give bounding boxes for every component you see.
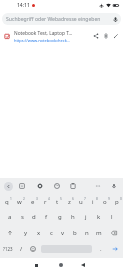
button[interactable]: Go — [107, 241, 123, 256]
button[interactable]: Copy link — [101, 31, 111, 41]
button[interactable]: f — [40, 210, 53, 224]
button[interactable]: Recents — [29, 258, 43, 272]
staticText: u — [79, 198, 83, 206]
button[interactable]: q — [0, 195, 13, 209]
button[interactable]: u — [75, 195, 87, 209]
button[interactable]: l — [105, 210, 118, 224]
staticText: 4 — [48, 197, 50, 201]
button[interactable]: / — [15, 241, 27, 256]
button[interactable]: Expand toolbar — [4, 182, 13, 191]
staticText: w — [17, 198, 22, 206]
button[interactable]: h — [66, 210, 79, 224]
button[interactable]: c — [45, 226, 57, 240]
staticText: 2 — [23, 197, 25, 201]
staticText: Notebook Test, Laptop T... — [14, 30, 73, 37]
button[interactable]: Suchbegriff oder Webadresse eingeben — [2, 13, 121, 25]
staticText: e — [31, 198, 35, 206]
staticText: 8 — [96, 197, 98, 201]
staticText: k — [97, 213, 101, 221]
staticText: d — [32, 213, 36, 221]
button[interactable]: z — [63, 195, 75, 209]
button[interactable]: Stickers — [17, 181, 27, 191]
staticText: a — [8, 213, 12, 221]
button[interactable]: s — [16, 210, 28, 224]
button[interactable]: More options — [93, 181, 103, 191]
staticText: c — [50, 229, 53, 237]
staticText: m — [96, 229, 102, 237]
staticText: f — [45, 213, 48, 221]
button[interactable]: k — [92, 210, 105, 224]
staticText: p — [115, 198, 119, 206]
button[interactable]: y — [19, 226, 32, 240]
button[interactable]: p — [111, 195, 123, 209]
button[interactable]: Themes — [52, 181, 62, 191]
staticText: g — [58, 213, 62, 221]
staticText: s — [21, 213, 24, 221]
button[interactable]: m — [93, 226, 105, 240]
staticText: y — [24, 229, 28, 237]
staticText: z — [68, 198, 71, 206]
button[interactable]: e — [26, 195, 39, 209]
button[interactable]: Voice input — [109, 181, 119, 191]
staticText: r — [44, 198, 47, 206]
button[interactable]: w — [13, 195, 26, 209]
staticText: x — [37, 229, 41, 237]
button[interactable]: n — [81, 226, 93, 240]
button[interactable]: . — [95, 241, 107, 256]
button[interactable]: Settings — [35, 181, 45, 191]
staticText: h — [71, 213, 75, 221]
button[interactable]: x — [32, 226, 45, 240]
button[interactable]: Shift — [0, 226, 19, 240]
button[interactable]: o — [99, 195, 111, 209]
staticText: n — [85, 229, 89, 237]
staticText: 1 — [10, 197, 12, 201]
button[interactable]: r — [39, 195, 51, 209]
button[interactable]: j — [79, 210, 92, 224]
staticText: 14:11 — [17, 2, 30, 9]
staticText: . — [100, 245, 102, 253]
staticText: v — [61, 229, 65, 237]
staticText: 7 — [84, 197, 86, 201]
staticText: 5 — [60, 197, 62, 201]
staticText: https://www.notebookcheck... — [14, 38, 71, 43]
staticText: t — [56, 198, 59, 206]
staticText: 9 — [108, 197, 110, 201]
staticText: q — [5, 198, 9, 206]
button[interactable]: t — [51, 195, 63, 209]
button[interactable]: Edit — [111, 31, 121, 41]
staticText: b — [73, 229, 77, 237]
staticText: 0 — [120, 197, 122, 201]
button[interactable]: Share — [91, 31, 101, 41]
staticText: j — [85, 213, 87, 221]
button[interactable]: a — [4, 210, 16, 224]
staticText: / — [20, 245, 23, 253]
button[interactable]: g — [53, 210, 66, 224]
button[interactable]: Back — [76, 258, 90, 272]
button[interactable]: ?123 — [0, 241, 15, 256]
staticText: o — [103, 198, 107, 206]
button[interactable]: v — [57, 226, 69, 240]
button[interactable]: Clipboard — [68, 181, 78, 191]
button[interactable]: Emoji — [27, 241, 39, 256]
button[interactable]: Voice search — [111, 15, 119, 23]
staticText: i — [92, 198, 94, 206]
button[interactable]: Backspace — [105, 226, 123, 240]
button[interactable]: b — [69, 226, 81, 240]
staticText: Suchbegriff oder Webadresse eingeben — [6, 16, 101, 23]
button[interactable]: Home — [54, 258, 68, 272]
staticText: 6 — [72, 197, 74, 201]
button[interactable]: Notebook Test, Laptop T... — [0, 27, 123, 45]
button[interactable]: d — [28, 210, 40, 224]
staticText: 3 — [36, 197, 38, 201]
staticText: ?123 — [3, 246, 13, 252]
staticText: l — [111, 213, 113, 221]
button[interactable]: i — [87, 195, 99, 209]
